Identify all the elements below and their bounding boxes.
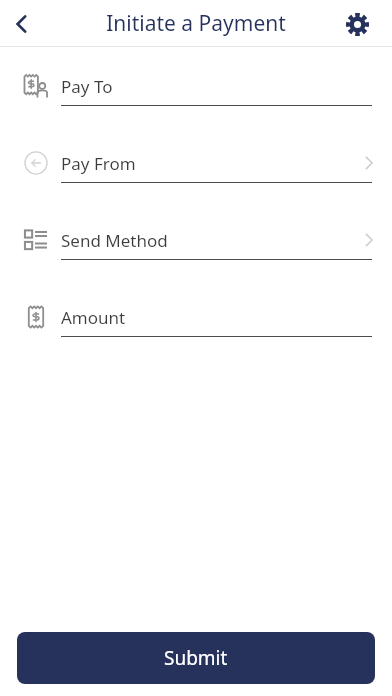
button[interactable]: Pay To (0, 66, 392, 106)
staticText: Submit (164, 645, 228, 671)
staticText: Send Method (61, 229, 168, 252)
button[interactable]: Send Method (0, 220, 392, 260)
button[interactable]: Pay From (0, 143, 392, 183)
staticText: Pay From (61, 152, 136, 175)
staticText: Amount (61, 306, 126, 329)
staticText: Initiate a Payment (0, 9, 392, 38)
button[interactable]: Settings (340, 7, 374, 41)
button[interactable]: Back (0, 2, 44, 46)
staticText: Pay To (61, 75, 113, 98)
button[interactable]: Submit (17, 632, 375, 684)
button[interactable]: Amount (0, 297, 392, 337)
